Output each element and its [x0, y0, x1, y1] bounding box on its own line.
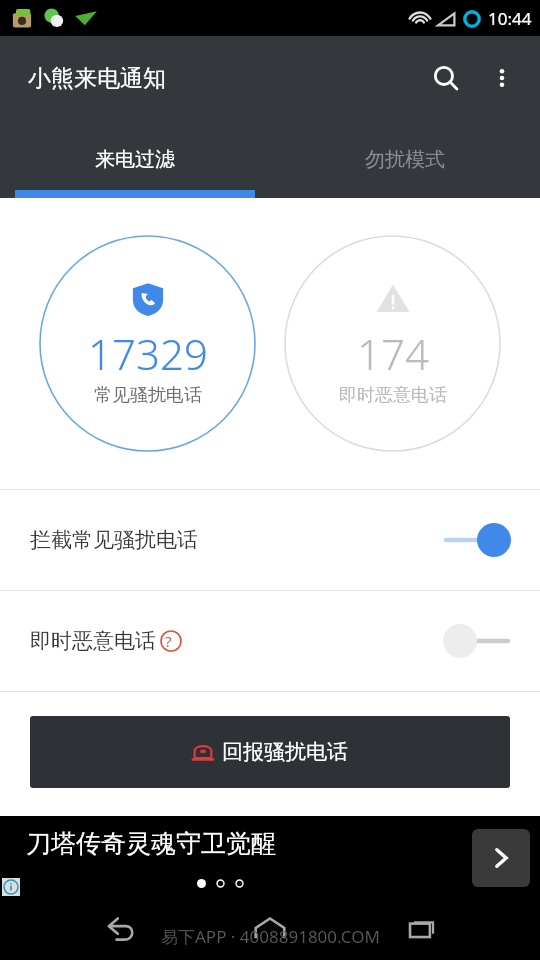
- button[interactable]: 17329: [39, 235, 256, 452]
- button[interactable]: 174: [284, 235, 501, 452]
- button[interactable]: 即时恶意电话: [0, 591, 540, 691]
- button[interactable]: Search: [418, 50, 474, 106]
- staticText: 即时恶意电话: [339, 384, 447, 407]
- button[interactable]: Toggle off: [442, 621, 512, 661]
- button[interactable]: Recent apps: [391, 902, 447, 958]
- button[interactable]: 刀塔传奇灵魂守卫觉醒: [0, 816, 540, 900]
- staticText: 拦截常见骚扰电话: [30, 527, 198, 553]
- button[interactable]: Next ad: [472, 829, 530, 887]
- button[interactable]: 来电过滤: [0, 120, 270, 198]
- button[interactable]: Toggle on: [442, 520, 512, 560]
- staticText: 小熊来电通知: [28, 64, 166, 93]
- staticText: 174: [357, 325, 429, 382]
- staticText: ?: [165, 631, 172, 651]
- staticText: 勿扰模式: [365, 147, 445, 172]
- staticText: 10:44: [488, 7, 532, 30]
- staticText: 易下APP · 4008891800.COM: [161, 925, 380, 948]
- staticText: 回报骚扰电话: [222, 739, 348, 765]
- button[interactable]: More options: [474, 50, 530, 106]
- staticText: 17329: [88, 325, 208, 382]
- staticText: 刀塔传奇灵魂守卫觉醒: [26, 828, 276, 859]
- button[interactable]: Back: [93, 902, 149, 958]
- button[interactable]: 勿扰模式: [270, 120, 540, 198]
- staticText: 常见骚扰电话: [94, 384, 202, 407]
- button[interactable]: 回报骚扰电话: [30, 716, 510, 788]
- button[interactable]: Home: [242, 902, 298, 958]
- staticText: 即时恶意电话: [30, 628, 156, 654]
- staticText: 来电过滤: [95, 147, 175, 172]
- button[interactable]: 拦截常见骚扰电话: [0, 490, 540, 590]
